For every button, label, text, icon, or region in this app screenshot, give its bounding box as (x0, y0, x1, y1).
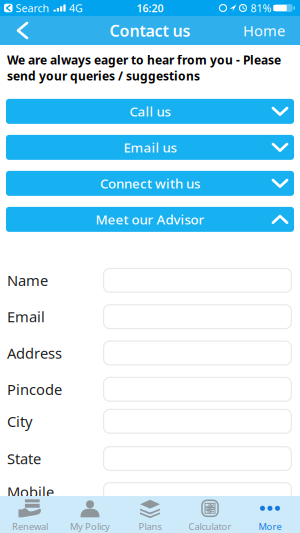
staticText: City (7, 411, 32, 431)
button[interactable]: Email field (103, 304, 292, 329)
staticText: Contact us (109, 20, 190, 41)
button[interactable]: Connect with us (6, 171, 294, 196)
staticText: Name (7, 271, 48, 290)
staticText: Mobile (7, 482, 54, 502)
button[interactable]: Address field (103, 340, 292, 365)
button[interactable]: State field (103, 446, 292, 471)
staticText: 16:20 (136, 1, 163, 15)
button[interactable]: Home (243, 21, 300, 40)
staticText: My Policy (70, 520, 110, 533)
staticText: 81% (250, 1, 271, 15)
button[interactable]: Email us (6, 135, 294, 160)
staticText: Email us (123, 138, 176, 156)
staticText: Search (15, 1, 49, 15)
staticText: State (7, 449, 41, 468)
button[interactable]: More (240, 496, 300, 533)
button[interactable]: Meet our Advisor (6, 207, 294, 232)
staticText: Call us (129, 102, 170, 120)
button[interactable]: Back (0, 16, 27, 45)
button[interactable]: Pincode field (103, 377, 292, 402)
button[interactable]: Renewal (0, 496, 60, 533)
button[interactable]: City field (103, 409, 292, 434)
staticText: Address (7, 343, 62, 363)
button[interactable]: Plans (120, 496, 180, 533)
staticText: Renewal (12, 520, 48, 533)
staticText: More (258, 520, 281, 533)
button[interactable]: Calculator (180, 496, 240, 533)
staticText: Plans (138, 520, 161, 533)
staticText: Home (243, 21, 285, 40)
staticText: Email (7, 307, 45, 326)
staticText: We are always eager to hear from you - P… (7, 52, 281, 84)
button[interactable]: Mobile field (103, 482, 292, 507)
staticText: 4G (69, 1, 83, 15)
button[interactable]: Name field (103, 268, 292, 293)
staticText: Calculator (188, 520, 231, 533)
button[interactable]: My Policy (60, 496, 120, 533)
staticText: Meet our Advisor (95, 210, 204, 228)
staticText: Pincode (7, 379, 62, 399)
staticText: Connect with us (100, 174, 200, 192)
button[interactable]: Call us (6, 99, 294, 124)
